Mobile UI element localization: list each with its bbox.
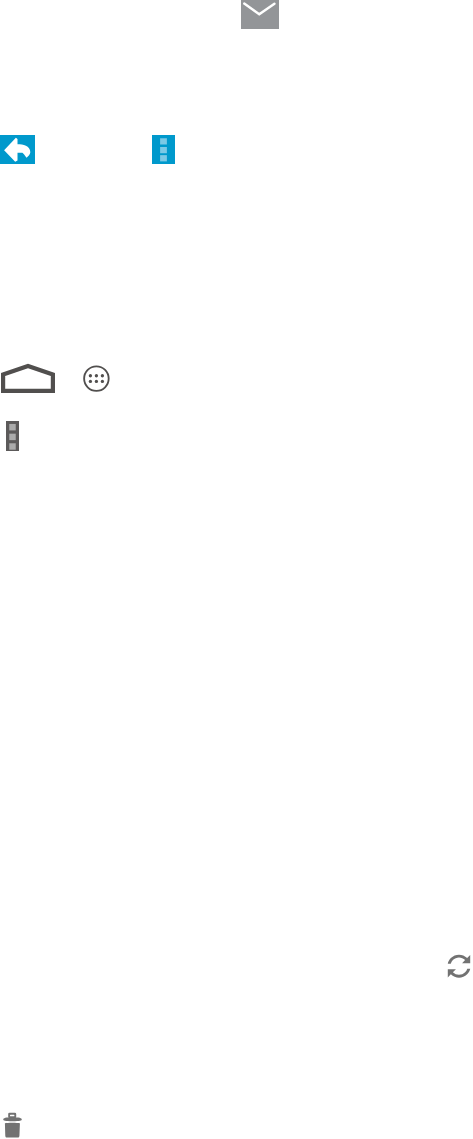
- button[interactable]: Apps: [83, 365, 110, 393]
- button[interactable]: More options: [152, 135, 175, 164]
- button[interactable]: Email: [241, 0, 279, 29]
- button[interactable]: Menu: [6, 421, 19, 451]
- button[interactable]: Back: [0, 135, 35, 164]
- button[interactable]: Home: [1, 363, 55, 393]
- button[interactable]: Sync: [444, 950, 473, 984]
- button[interactable]: Delete: [3, 1112, 22, 1139]
